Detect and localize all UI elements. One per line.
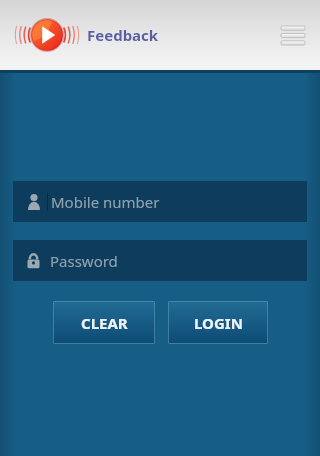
button[interactable]: Menu — [278, 22, 308, 48]
staticText: LOGIN — [194, 313, 243, 333]
staticText: Password — [50, 251, 118, 271]
staticText: CLEAR — [81, 313, 128, 333]
button[interactable]: Password — [13, 240, 307, 281]
button[interactable]: Mobile number — [13, 181, 307, 222]
button[interactable]: Feedback — [8, 13, 159, 57]
button[interactable]: LOGIN — [168, 301, 268, 344]
button[interactable]: CLEAR — [53, 301, 155, 344]
staticText: Feedback — [87, 25, 159, 45]
staticText: Mobile number — [51, 192, 160, 212]
